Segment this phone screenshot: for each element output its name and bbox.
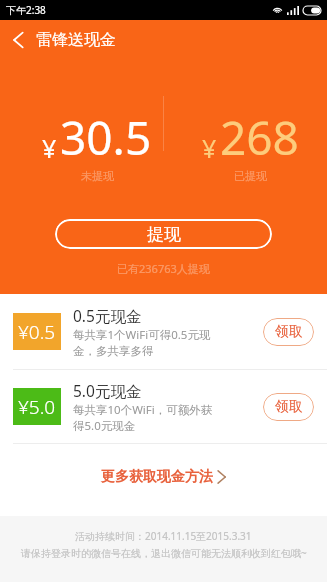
staticText: 下午2:38 [6, 3, 46, 17]
button[interactable]: ¥0.5 [0, 294, 327, 369]
staticText: 请保持登录时的微信号在线，退出微信可能无法顺利收到红包哦~ [21, 546, 307, 560]
button[interactable]: ¥5.0 [0, 370, 327, 443]
staticText: ¥ [42, 131, 57, 165]
staticText: 5.0元现金 [73, 380, 142, 401]
button[interactable]: Back [0, 22, 36, 58]
button[interactable]: 领取 [263, 318, 314, 346]
staticText: ¥ [202, 131, 217, 165]
staticText: 每共享10个WiFi，可额外获 得5.0元现金 [73, 402, 213, 434]
staticText: 领取 [275, 398, 303, 416]
staticText: 每共享1个WiFi可得0.5元现 金，多共享多得 [73, 327, 211, 358]
staticText: 30.5 [60, 106, 152, 169]
staticText: 提现 [147, 224, 181, 245]
staticText: 268 [220, 106, 299, 169]
staticText: 领取 [275, 323, 303, 341]
staticText: 已有236763人提现 [117, 261, 210, 276]
staticText: 已提现 [234, 169, 267, 183]
staticText: 更多获取现金方法 [101, 468, 213, 486]
staticText: 0.5元现金 [73, 305, 142, 326]
staticText: ¥5.0 [18, 394, 56, 420]
staticText: ¥0.5 [18, 319, 56, 345]
staticText: 未提现 [81, 169, 114, 183]
staticText: 活动持续时间：2014.11.15至2015.3.31 [75, 529, 252, 543]
button[interactable]: 更多获取现金方法 [0, 444, 327, 509]
button[interactable]: 领取 [263, 393, 314, 421]
button[interactable]: 提现 [55, 219, 272, 249]
staticText: 雷锋送现金 [36, 30, 116, 50]
